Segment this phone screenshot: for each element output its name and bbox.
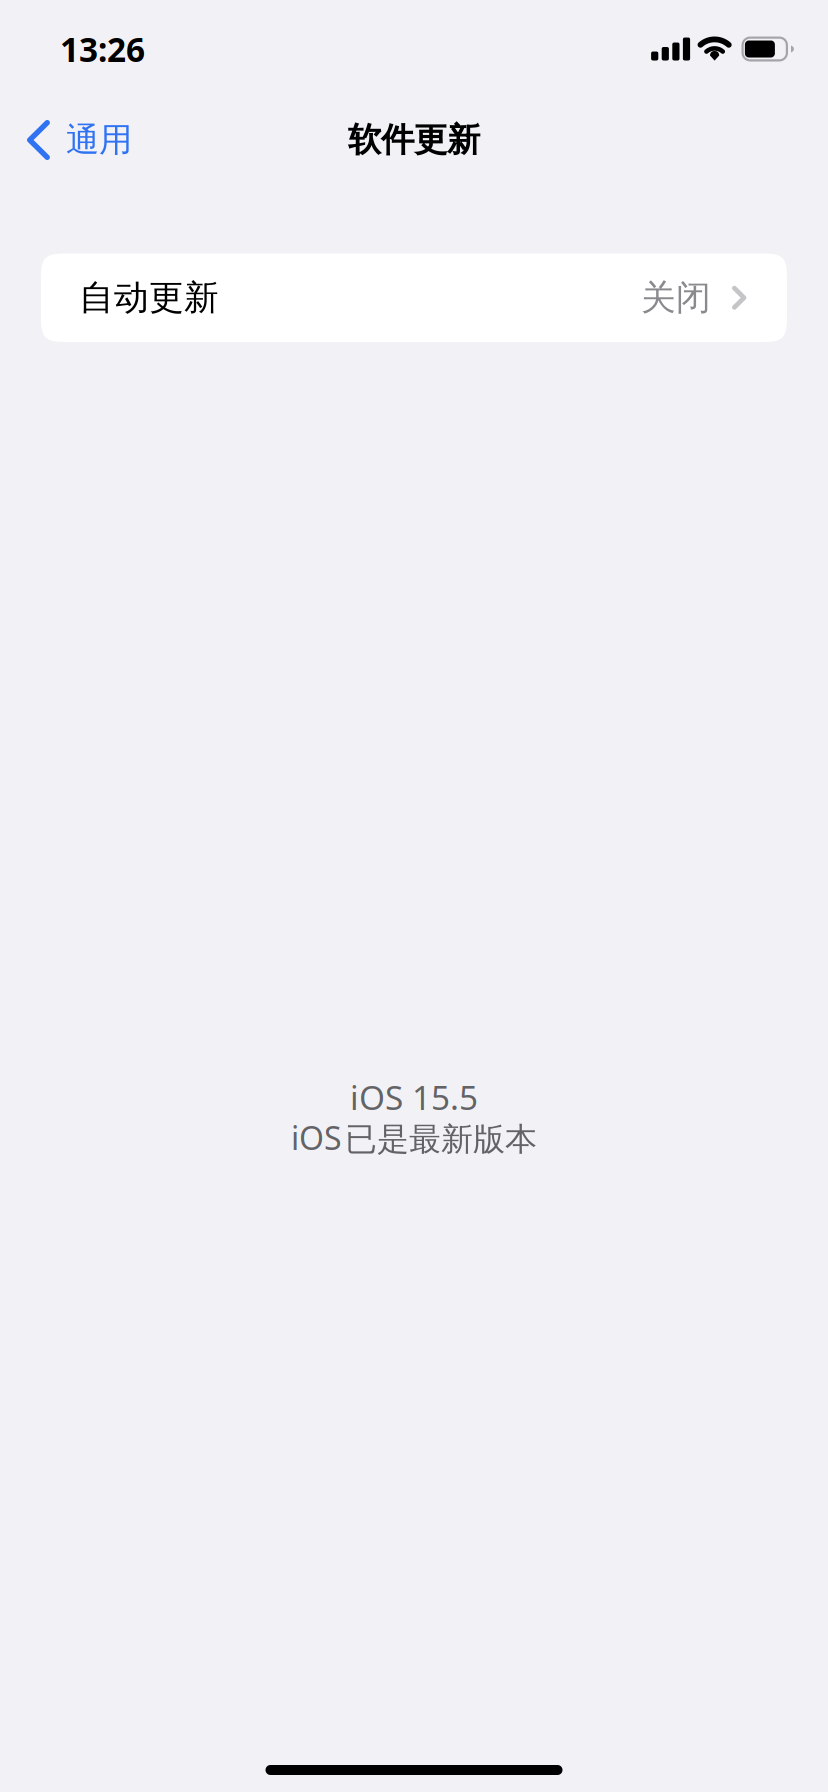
staticText: iOS 15.5	[350, 1075, 478, 1119]
staticText: 软件更新	[348, 119, 480, 160]
staticText: 通用	[66, 119, 132, 160]
staticText: 自动更新	[79, 276, 219, 319]
button[interactable]: 自动更新	[41, 253, 787, 342]
button[interactable]: 通用	[23, 107, 136, 172]
staticText: iOS 已是最新版本	[291, 1116, 537, 1159]
staticText: 13:26	[60, 27, 145, 71]
staticText: 关闭	[641, 276, 711, 319]
